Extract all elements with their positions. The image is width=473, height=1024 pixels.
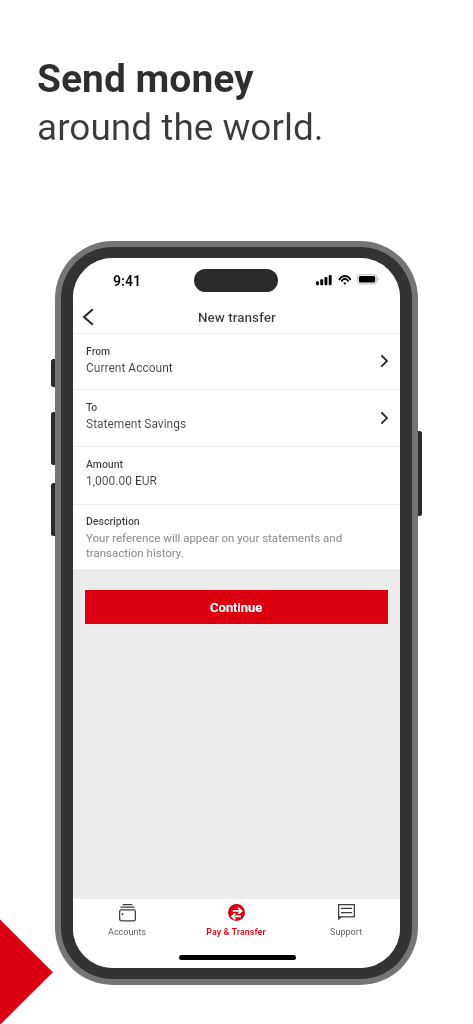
staticText: Statement Savings xyxy=(86,417,187,431)
staticText: Support xyxy=(330,927,362,938)
staticText: 9:41 xyxy=(113,273,142,289)
staticText: New transfer xyxy=(198,309,276,325)
staticText: From xyxy=(86,345,111,357)
button[interactable]: Support xyxy=(301,899,391,947)
staticText: Description xyxy=(86,515,140,527)
staticText: Send money xyxy=(37,56,254,102)
staticText: Current Account xyxy=(86,361,173,375)
staticText: Continue xyxy=(210,600,263,615)
staticText: Amount xyxy=(86,458,124,470)
button[interactable]: Pay & Transfer xyxy=(191,899,281,947)
staticText: Pay & Transfer xyxy=(206,927,266,938)
button[interactable]: Accounts xyxy=(82,899,172,947)
button[interactable]: From xyxy=(73,333,400,389)
button[interactable]: To xyxy=(73,389,400,447)
staticText: Your reference will appear on your state… xyxy=(86,531,361,559)
staticText: Accounts xyxy=(108,927,146,938)
staticText: 1,000.00 EUR xyxy=(86,474,157,488)
button[interactable]: Amount xyxy=(73,446,400,504)
button[interactable]: Continue xyxy=(85,590,388,624)
staticText: To xyxy=(86,401,98,413)
staticText: around the world. xyxy=(37,106,324,149)
button[interactable]: Back xyxy=(73,302,103,331)
